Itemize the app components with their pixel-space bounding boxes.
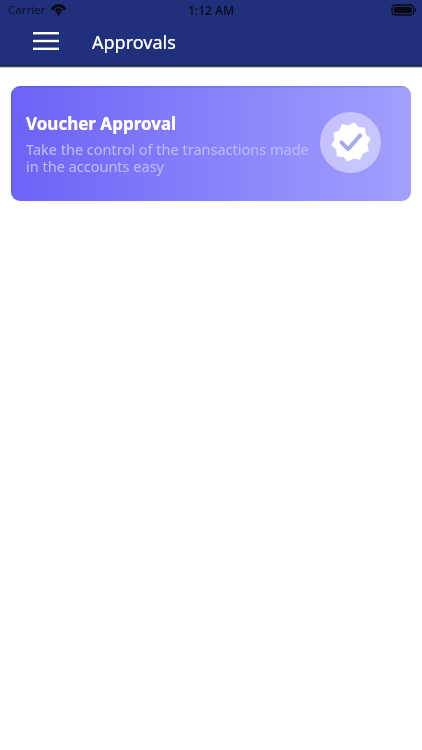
staticText: Carrier — [8, 2, 46, 18]
staticText: Take the control of the transactions mad… — [26, 139, 309, 176]
button[interactable]: Open navigation menu — [20, 19, 71, 63]
button[interactable]: Voucher Approval — [11, 86, 411, 201]
staticText: Voucher Approval — [26, 112, 177, 135]
staticText: 1:12 AM — [188, 2, 235, 18]
staticText: Approvals — [92, 30, 176, 55]
